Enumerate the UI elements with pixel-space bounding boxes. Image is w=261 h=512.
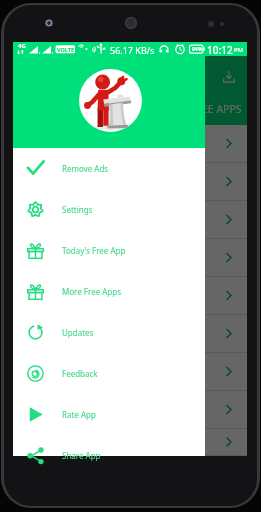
staticText: FREE APPS xyxy=(190,102,242,116)
button[interactable]: Share App xyxy=(13,435,205,476)
staticText: 56.17 KB/s xyxy=(110,44,155,56)
button[interactable]: Feedback xyxy=(13,353,205,394)
staticText: VOLTE xyxy=(57,46,75,53)
staticText: Today's Free App xyxy=(62,245,126,256)
button[interactable] xyxy=(13,163,247,201)
staticText: Rate App xyxy=(62,409,96,420)
button[interactable]: Settings xyxy=(13,189,205,230)
staticText: PM xyxy=(234,46,244,54)
button[interactable] xyxy=(13,201,247,239)
staticText: 4G xyxy=(18,42,26,50)
button[interactable]: Download xyxy=(221,69,237,85)
staticText: Settings xyxy=(62,204,93,215)
button[interactable] xyxy=(13,125,247,163)
button[interactable]: More Free Apps xyxy=(13,271,205,312)
staticText: 10:12 xyxy=(207,43,233,57)
staticText: Share App xyxy=(62,450,101,461)
button[interactable]: Rate App xyxy=(13,394,205,435)
button[interactable]: Updates xyxy=(13,312,205,353)
staticText: Feedback xyxy=(62,368,98,379)
button[interactable] xyxy=(13,239,247,277)
staticText: Remove Ads xyxy=(62,163,109,174)
button[interactable] xyxy=(13,277,247,315)
staticText: More Free Apps xyxy=(62,286,122,297)
button[interactable]: Today's Free App xyxy=(13,230,205,271)
staticText: 94% xyxy=(192,46,203,53)
staticText: Updates xyxy=(62,327,94,338)
button[interactable] xyxy=(13,315,247,353)
button[interactable] xyxy=(13,353,247,391)
button[interactable]: Remove Ads xyxy=(13,148,205,189)
button[interactable] xyxy=(13,391,247,429)
button[interactable] xyxy=(13,429,247,456)
